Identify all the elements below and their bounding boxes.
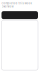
- staticText: Completed this week: [1, 2, 31, 5]
- staticText: Overview: [1, 5, 13, 8]
